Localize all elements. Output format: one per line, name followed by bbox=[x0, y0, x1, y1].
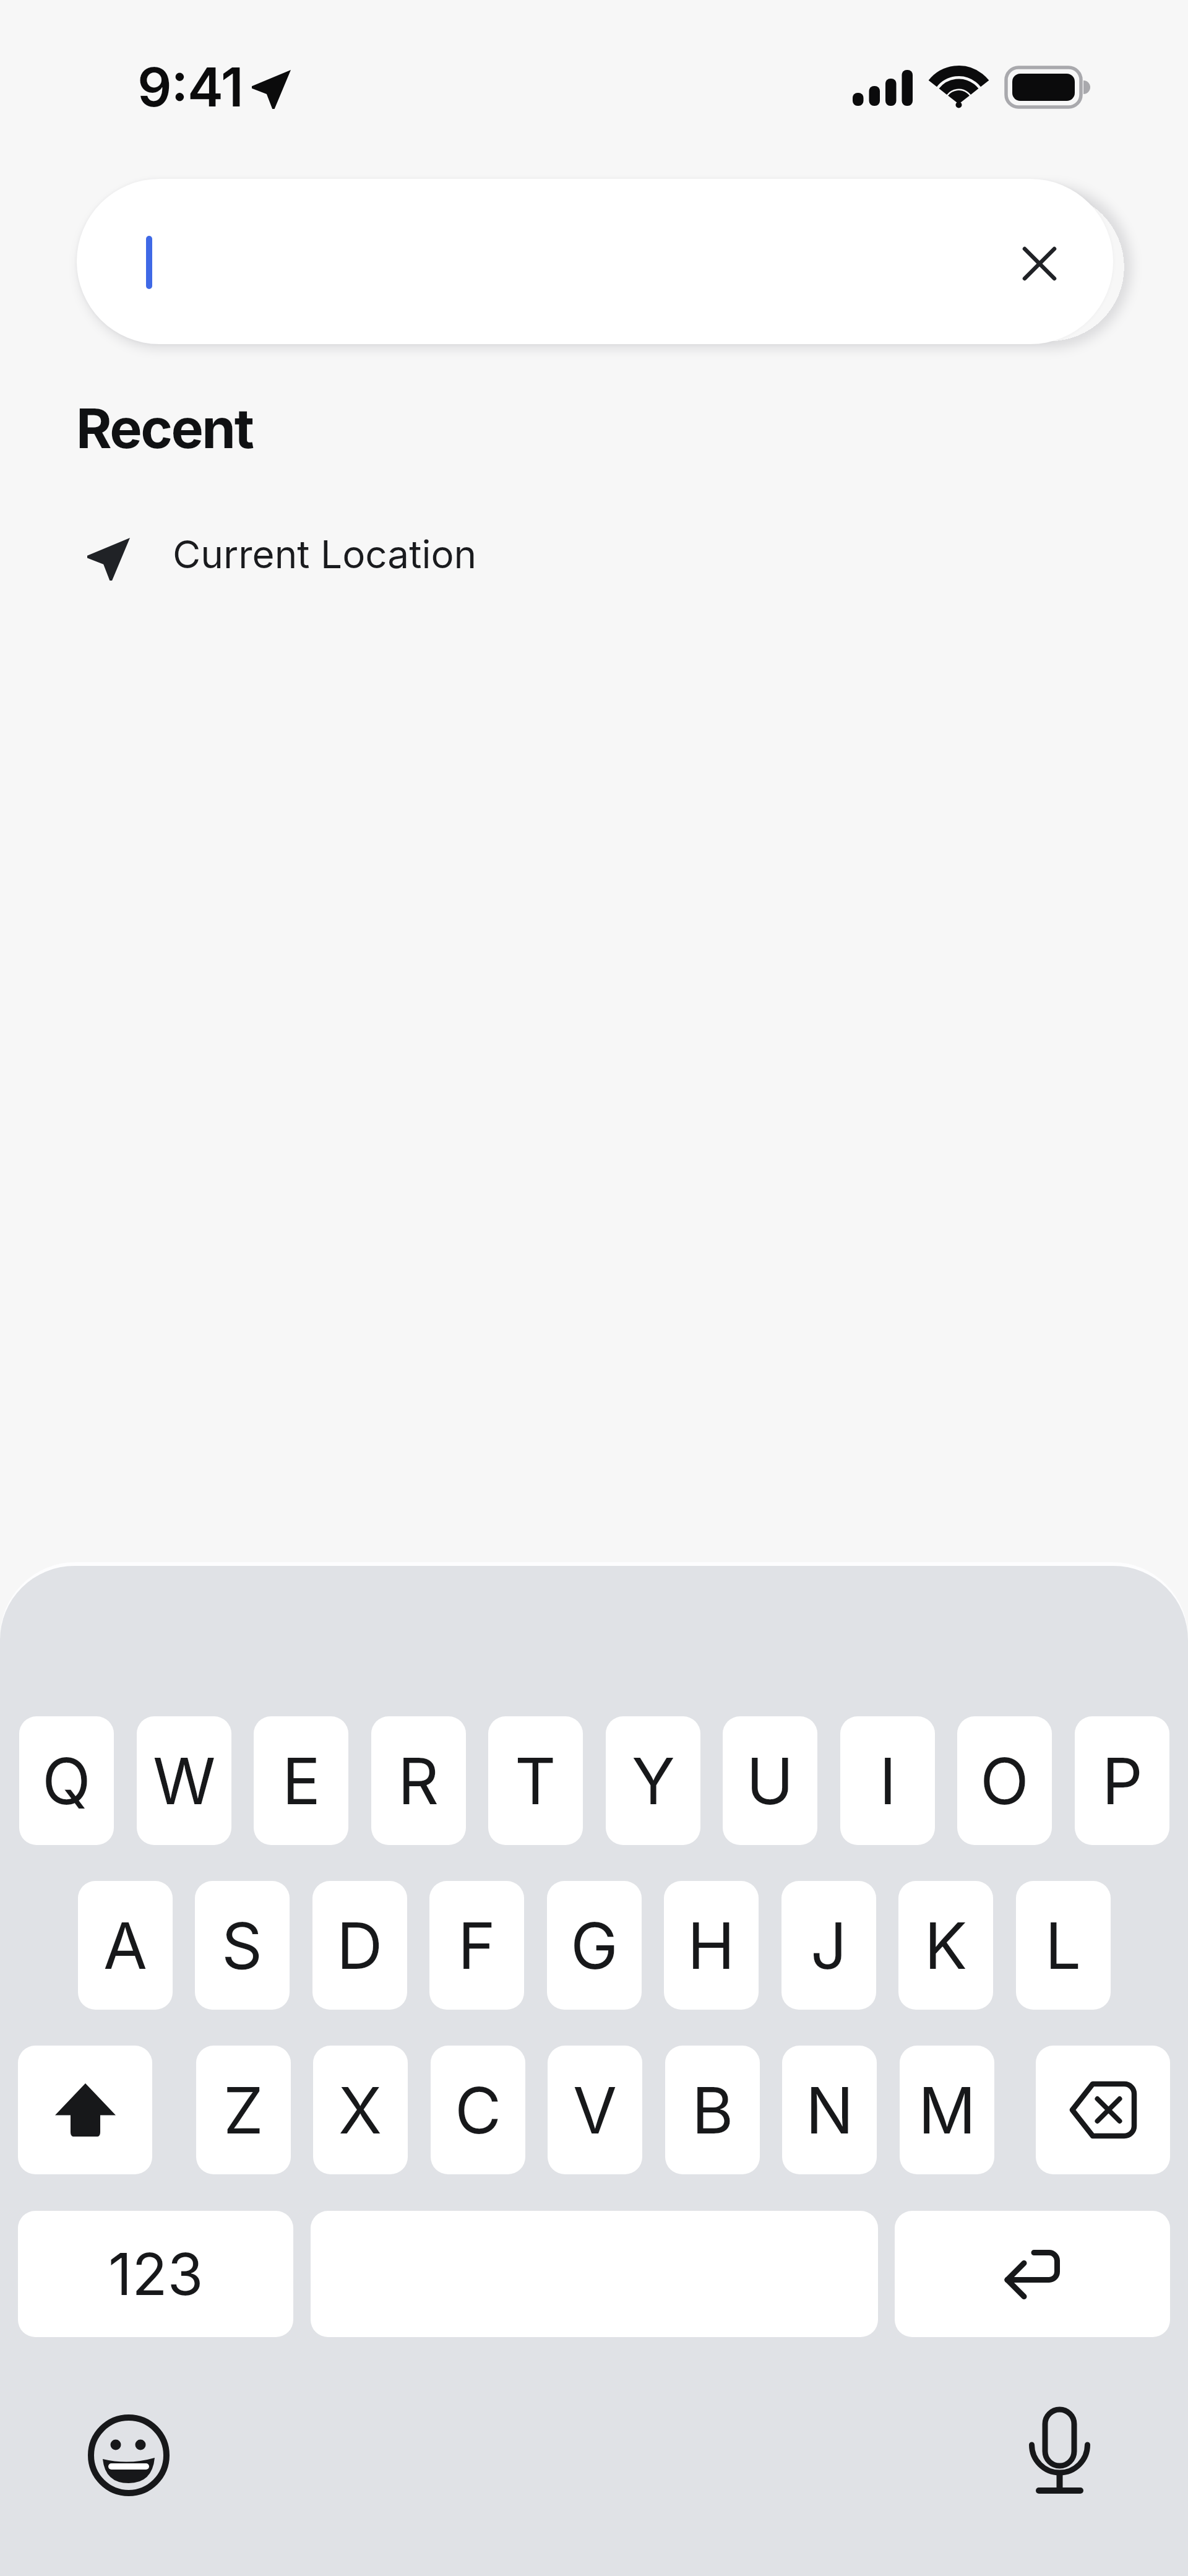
staticText: I bbox=[879, 1742, 897, 1820]
staticText: L bbox=[1045, 1907, 1082, 1984]
staticText: J bbox=[811, 1907, 847, 1984]
staticText: G bbox=[570, 1907, 618, 1984]
staticText: F bbox=[458, 1907, 496, 1984]
staticText: K bbox=[924, 1907, 968, 1984]
staticText: O bbox=[980, 1742, 1029, 1820]
staticText: W bbox=[153, 1742, 216, 1820]
staticText: N bbox=[806, 2072, 854, 2149]
staticText: Y bbox=[632, 1742, 675, 1820]
staticText: T bbox=[515, 1742, 556, 1820]
staticText: B bbox=[692, 2072, 734, 2149]
staticText: 9:41 bbox=[137, 54, 243, 119]
staticText: Z bbox=[223, 2072, 264, 2149]
staticText: S bbox=[222, 1907, 263, 1984]
staticText: X bbox=[338, 2072, 382, 2149]
staticText: M bbox=[918, 2072, 976, 2149]
staticText: R bbox=[398, 1742, 439, 1820]
staticText: Current Location bbox=[173, 531, 477, 577]
staticText: V bbox=[573, 2072, 618, 2149]
staticText: 123 bbox=[108, 2239, 204, 2309]
staticText: Q bbox=[42, 1742, 91, 1820]
staticText: A bbox=[103, 1907, 148, 1984]
staticText: P bbox=[1102, 1742, 1143, 1820]
staticText: E bbox=[282, 1742, 321, 1820]
staticText: Recent bbox=[76, 395, 253, 461]
staticText: H bbox=[687, 1907, 735, 1984]
staticText: U bbox=[746, 1742, 794, 1820]
staticText: D bbox=[337, 1907, 383, 1984]
staticText: C bbox=[455, 2072, 502, 2149]
